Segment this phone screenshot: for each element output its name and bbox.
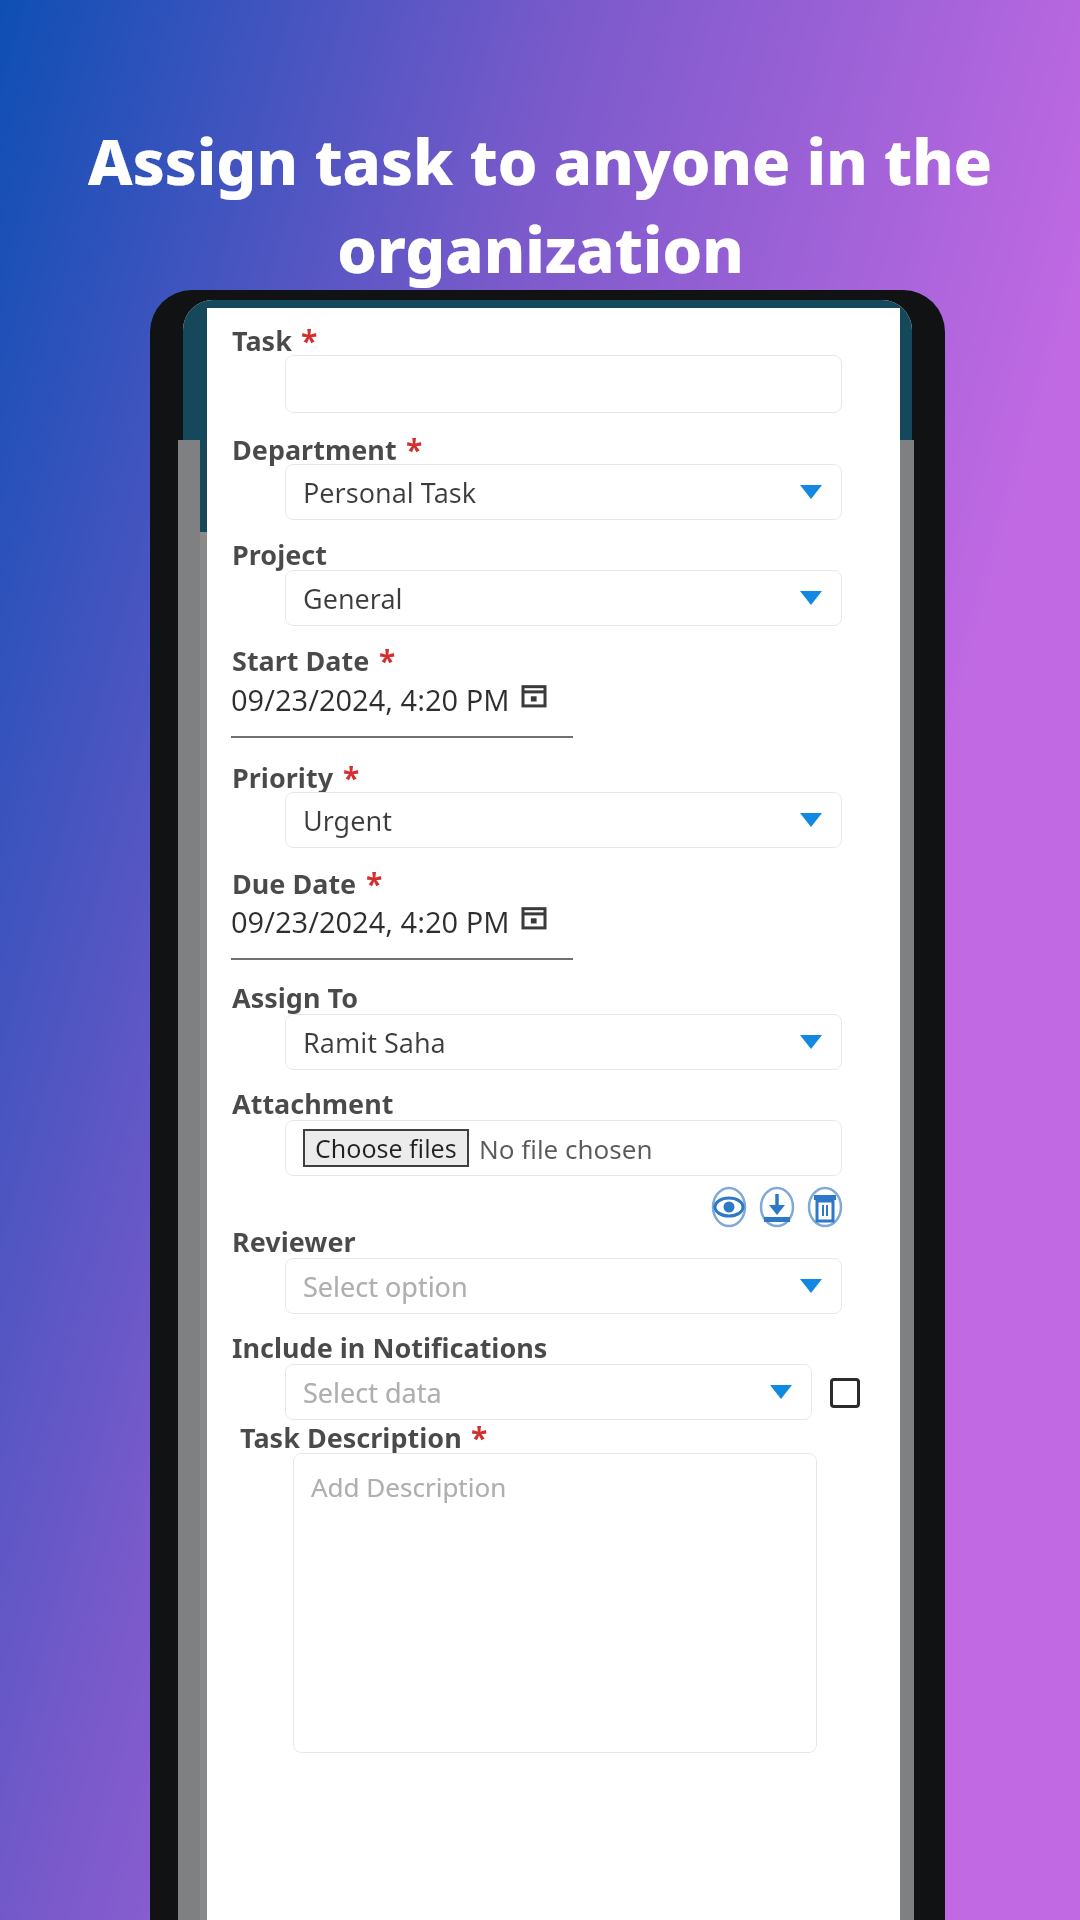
staticText: General (303, 580, 403, 617)
staticText: Priority (232, 759, 334, 796)
staticText: * (366, 863, 383, 904)
button[interactable]: Personal Task (285, 464, 842, 520)
staticText: Department (232, 431, 397, 468)
other: Pick date (521, 904, 547, 930)
staticText: Task Description (240, 1419, 462, 1456)
staticText: Task (232, 322, 292, 359)
button[interactable]: Delete (808, 1187, 842, 1227)
staticText: Start Date (232, 642, 370, 679)
button[interactable]: 09/23/2024, 4:20 PM (231, 680, 573, 738)
staticText: * (343, 757, 360, 798)
staticText: Urgent (303, 802, 392, 839)
staticText: Reviewer (232, 1223, 356, 1260)
staticText: Ramit Saha (303, 1024, 446, 1061)
staticText: Add Description (311, 1469, 507, 1504)
staticText: Include in Notifications (232, 1329, 548, 1366)
staticText: Assign To (232, 979, 359, 1016)
button[interactable]: Select data (285, 1364, 812, 1420)
staticText: Due Date (232, 865, 357, 902)
staticText: organization (337, 206, 744, 292)
button[interactable]: Choose files (315, 1129, 457, 1167)
button[interactable]: Urgent (285, 792, 842, 848)
staticText: Attachment (232, 1085, 394, 1122)
staticText: Assign task to anyone in the (88, 118, 992, 204)
button[interactable]: Download (760, 1187, 794, 1227)
staticText: No file chosen (479, 1131, 653, 1166)
staticText: Select option (303, 1268, 468, 1305)
button[interactable]: Include in notifications (830, 1378, 860, 1408)
staticText: Select data (303, 1374, 442, 1411)
staticText: Project (232, 536, 327, 573)
button[interactable]: 09/23/2024, 4:20 PM (231, 902, 573, 960)
staticText: Personal Task (303, 474, 477, 511)
staticText: 09/23/2024, 4:20 PM (231, 680, 510, 719)
button[interactable] (285, 355, 842, 413)
staticText: * (301, 320, 318, 361)
staticText: Choose files (315, 1131, 457, 1165)
button[interactable]: Add Description (293, 1453, 817, 1753)
staticText: 09/23/2024, 4:20 PM (231, 902, 510, 941)
staticText: * (471, 1417, 488, 1458)
button[interactable]: View (712, 1187, 746, 1227)
button[interactable]: Ramit Saha (285, 1014, 842, 1070)
button[interactable]: General (285, 570, 842, 626)
staticText: * (379, 640, 396, 681)
other: Pick date (521, 682, 547, 708)
staticText: * (406, 429, 423, 470)
button[interactable]: Select option (285, 1258, 842, 1314)
